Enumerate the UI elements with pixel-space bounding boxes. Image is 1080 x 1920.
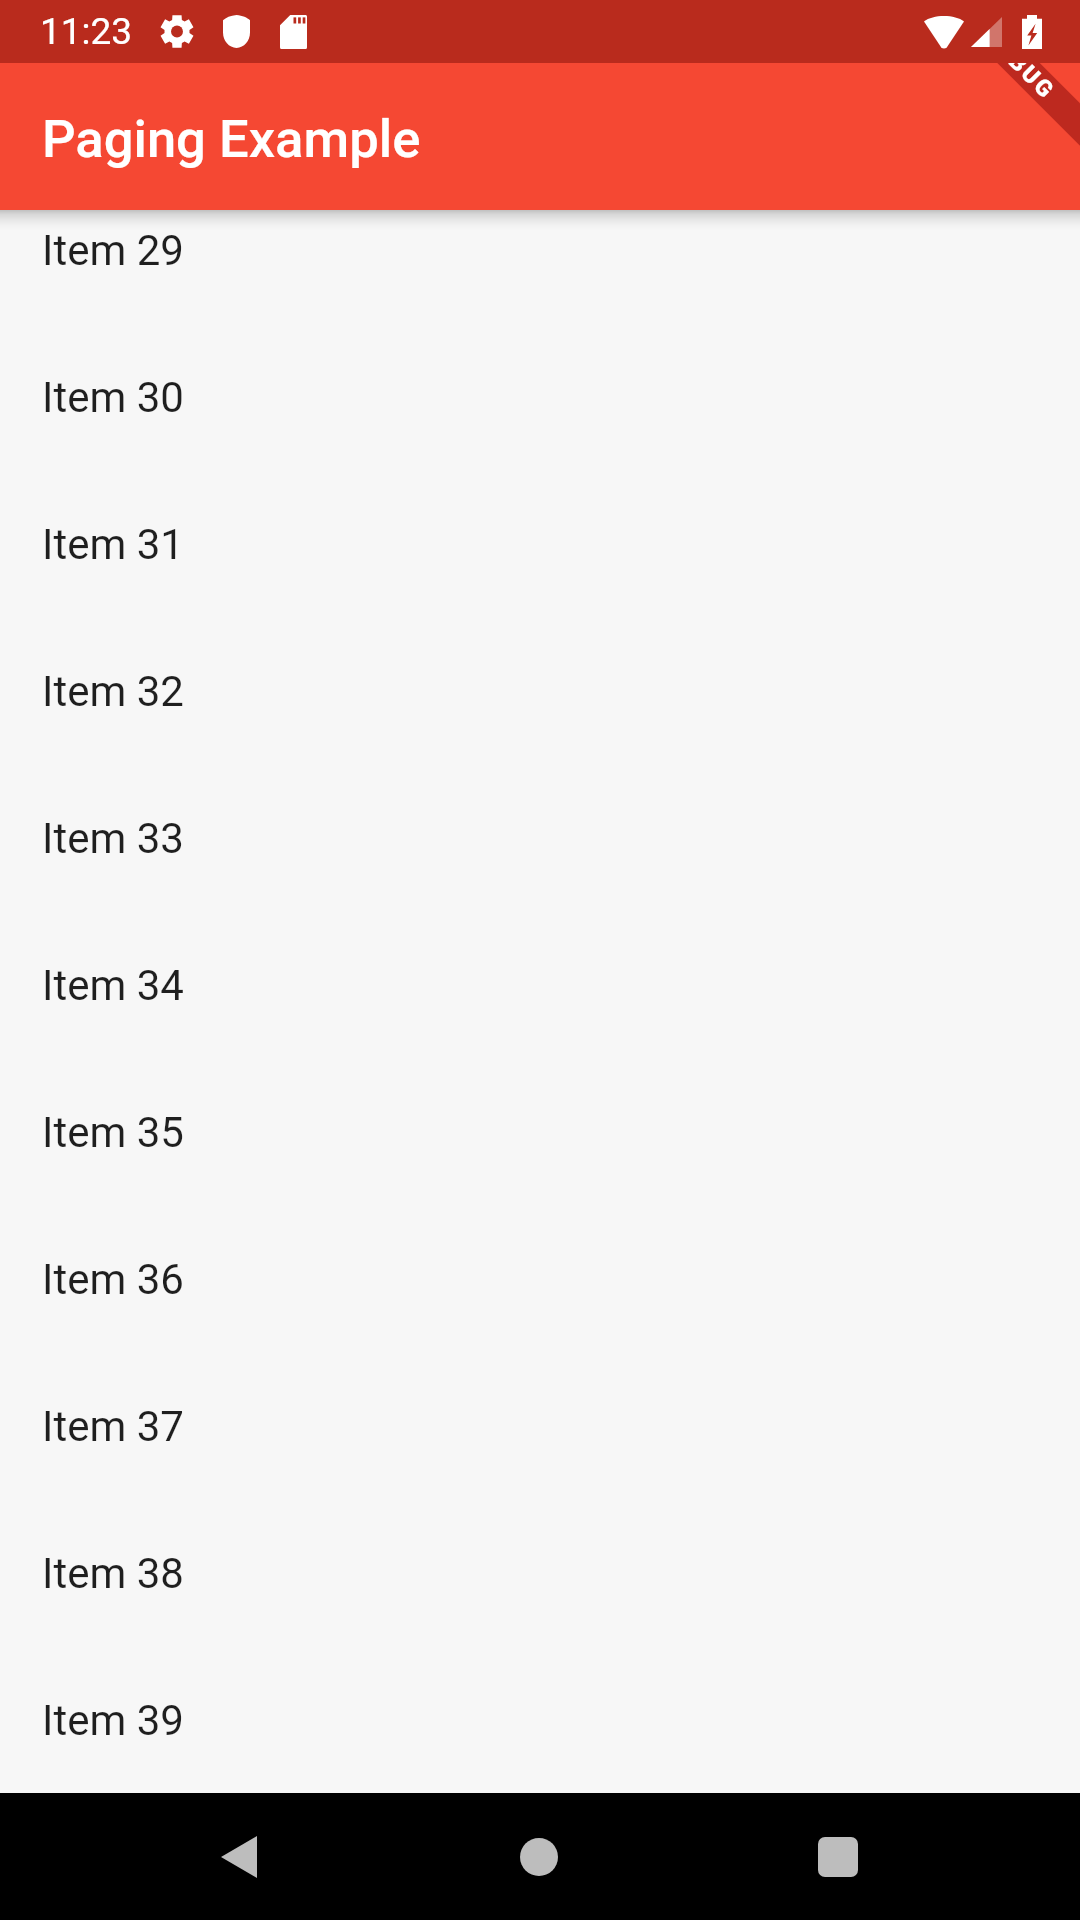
button[interactable]: Item 30 xyxy=(0,324,1080,471)
staticText: Paging Example xyxy=(42,108,421,170)
staticText: Item 39 xyxy=(42,1696,184,1745)
button[interactable]: Item 32 xyxy=(0,618,1080,765)
button[interactable]: Item 38 xyxy=(0,1500,1080,1647)
button[interactable]: Item 36 xyxy=(0,1206,1080,1353)
button[interactable]: Item 34 xyxy=(0,912,1080,1059)
button[interactable]: Item 33 xyxy=(0,765,1080,912)
staticText: Item 33 xyxy=(42,814,184,863)
staticText: Item 35 xyxy=(42,1108,184,1157)
button[interactable]: Item 40 xyxy=(0,1794,1080,1920)
button[interactable]: Back xyxy=(189,1807,289,1907)
button[interactable]: Item 29 xyxy=(0,177,1080,324)
button[interactable]: Item 39 xyxy=(0,1647,1080,1794)
staticText: Item 37 xyxy=(42,1402,184,1451)
staticText: Item 30 xyxy=(42,373,184,422)
button[interactable]: Home xyxy=(489,1807,589,1907)
staticText: Item 34 xyxy=(42,961,184,1010)
button[interactable]: Item 31 xyxy=(0,471,1080,618)
staticText: DEBUG xyxy=(980,24,1060,105)
staticText: Item 36 xyxy=(42,1255,184,1304)
staticText: Item 31 xyxy=(42,520,184,569)
button[interactable]: Recent apps xyxy=(788,1807,888,1907)
staticText: Item 32 xyxy=(42,667,184,716)
button[interactable]: Item 35 xyxy=(0,1059,1080,1206)
button[interactable]: Item 37 xyxy=(0,1353,1080,1500)
staticText: Item 38 xyxy=(42,1549,184,1598)
staticText: 11:23 xyxy=(40,10,133,53)
staticText: Item 29 xyxy=(42,226,184,275)
